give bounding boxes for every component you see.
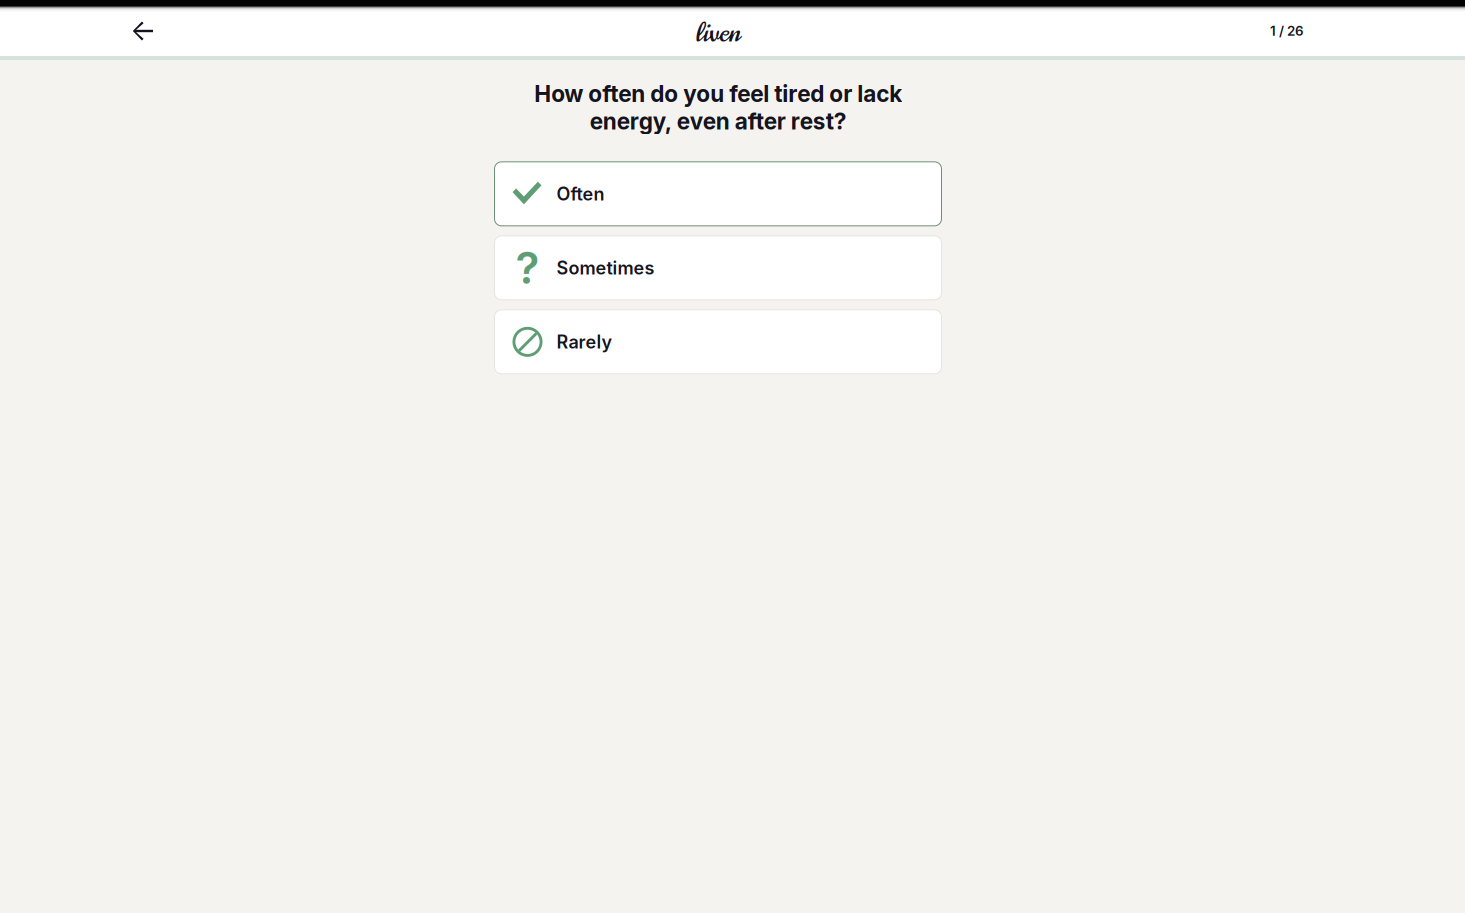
staticText: 1 / 26	[1270, 23, 1304, 39]
staticText: Often	[556, 183, 604, 205]
button[interactable]: Often	[494, 162, 941, 226]
button[interactable]: Back	[120, 8, 166, 54]
staticText: ?	[515, 241, 539, 294]
button[interactable]: 1 / 26	[1270, 8, 1304, 54]
staticText: liven	[695, 14, 740, 52]
button[interactable]: Rarely	[494, 310, 941, 374]
staticText: How often do you feel tired or lack ener…	[534, 80, 902, 135]
button[interactable]: ?	[494, 236, 941, 300]
staticText: Sometimes	[556, 257, 654, 279]
staticText: Rarely	[556, 331, 612, 353]
